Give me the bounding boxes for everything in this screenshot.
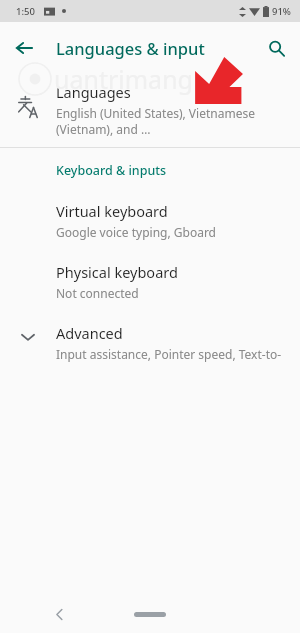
staticText: Input assistance, Pointer speed, Text-to… — [56, 346, 288, 362]
staticText: uantrimang — [54, 62, 193, 96]
staticText: Languages & input — [56, 37, 205, 59]
staticText: Virtual keyboard — [56, 201, 168, 221]
button[interactable]: Languages — [0, 74, 300, 141]
button[interactable]: Back — [42, 597, 76, 631]
staticText: 1:50 — [16, 5, 35, 18]
staticText: Not connected — [56, 285, 139, 301]
button[interactable]: Back — [6, 30, 42, 66]
staticText: Google voice typing, Gboard — [56, 224, 216, 240]
button[interactable]: Home — [131, 603, 169, 625]
staticText: Languages — [56, 82, 131, 102]
button[interactable]: Advanced — [0, 323, 300, 362]
staticText: Keyboard & inputs — [56, 162, 167, 179]
button[interactable]: Physical keyboard — [0, 262, 300, 301]
staticText: 91% — [272, 5, 291, 18]
button[interactable]: Search — [258, 30, 294, 66]
staticText: Physical keyboard — [56, 262, 178, 282]
button[interactable]: Virtual keyboard — [0, 201, 300, 240]
staticText: Advanced — [56, 323, 123, 343]
staticText: English (United States), Vietnamese (Vie… — [56, 105, 284, 137]
